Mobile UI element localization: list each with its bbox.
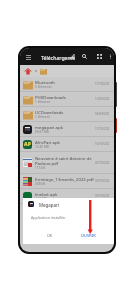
button[interactable]: linebet.apk [20,189,114,204]
staticText: Neuvaine à saint Antoine de Padoue.pdf [35,155,94,166]
button[interactable]: megapari.apk [20,122,114,137]
staticText: Megapari [39,202,60,208]
staticText: 09/10/202 [95,179,110,183]
staticText: OK [47,233,53,238]
staticText: 16/10/202 [95,142,110,146]
button[interactable]: Downloads folder [39,67,48,76]
staticText: AP [24,141,31,148]
staticText: 4.19 MB [35,197,48,201]
staticText: Bluetooth [35,79,55,85]
button[interactable]: OK [42,230,58,240]
button[interactable]: UCDownloads [20,107,114,122]
staticText: 69.67 MB [35,130,49,134]
staticText: 13/09/202 [95,97,110,101]
button[interactable]: Ermitage_13mardis_2022.pdf [20,174,114,189]
button[interactable]: PHXDownloads [20,92,114,107]
staticText: 06/09/202 [95,112,110,116]
button[interactable]: More options [106,52,114,60]
staticText: megapari.apk [35,124,63,130]
staticText: 09/10/202 [95,194,110,198]
button[interactable]: AP [20,137,114,152]
staticText: linebet.apk [35,191,58,197]
staticText: Application installée. [31,215,66,220]
staticText: PHXDownloads [35,94,66,100]
staticText: AfroPari.apk [35,139,60,145]
button[interactable]: Neuvaine à saint Antoine de Padoue.pdf [20,152,114,174]
staticText: 5 éléments [35,85,52,89]
staticText: 1 élément [35,115,50,119]
staticText: 1 élément [35,100,50,104]
button[interactable]: Bluetooth [20,77,114,92]
staticText: Ermitage_13mardis_2022.pdf [35,176,94,182]
button[interactable]: OUVRIR [77,230,99,240]
staticText: 115 kB [35,166,46,170]
button[interactable]: Grid view [95,52,104,61]
staticText: UCDownloads [35,109,64,115]
staticText: 17/10/202 [95,127,110,131]
staticText: 14.40 MB [35,145,49,149]
staticText: 05/10/202 [95,161,110,165]
button[interactable]: Home [23,66,33,76]
button[interactable]: Sort [68,52,77,61]
staticText: Téléchargeme [41,54,76,61]
staticText: 338 kB [35,182,46,186]
staticText: OUVRIR [81,233,96,238]
button[interactable]: Search [80,52,89,61]
staticText: 17/10/202 [95,82,110,86]
button[interactable]: Menu [23,52,33,62]
